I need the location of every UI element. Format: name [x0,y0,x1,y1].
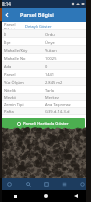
staticText: 1441 [45,72,55,77]
button[interactable]: Zemin Tipi [0,101,91,108]
button[interactable]: Back [0,8,14,22]
staticText: 8:14 [2,1,11,7]
staticText: Yukarı [45,48,57,53]
staticText: İl [4,32,7,37]
staticText: Ordu [45,32,55,37]
button[interactable]: Parsel Bilgisi [0,22,91,30]
staticText: Parsel [4,72,16,77]
staticText: Mahalle No [4,56,26,61]
button[interactable]: Menü [73,178,91,190]
button[interactable]: Back [61,190,91,202]
staticText: Pafta [4,109,14,114]
button[interactable]: Recents [0,190,31,202]
button[interactable]: Kayıtlar [55,178,73,190]
staticText: Mahalle/Köy [4,48,28,53]
staticText: Tarla [45,88,55,93]
staticText: Ünye [45,40,55,45]
button[interactable]: Parsel [37,178,55,190]
staticText: 2.845 m2 [45,80,63,85]
button[interactable]: Mahalle No [0,54,91,62]
staticText: Ana Taşınmaz [45,102,71,107]
button[interactable]: Yüz Ölçüm [0,78,91,86]
button[interactable]: Ara [19,178,37,190]
staticText: 10025 [45,56,57,61]
button[interactable]: İlçe [0,38,91,46]
button[interactable]: Ada [0,62,91,70]
button[interactable]: Harita [0,178,19,190]
button[interactable]: Mahalle/Köy [0,46,91,54]
button[interactable]: Parseli Haritada Göster [1,118,85,129]
staticText: 0 [45,64,48,69]
button[interactable]: Nitelik [0,86,91,94]
staticText: Parsel Bilgisi [20,11,54,19]
staticText: Detaylı Göster [25,24,52,29]
staticText: Ada [4,64,12,69]
button[interactable]: Parsel [0,70,91,78]
button[interactable]: Mevkii [0,94,91,101]
staticText: Parseli Haritada Göster [23,121,69,127]
staticText: Merkez [45,95,59,100]
button[interactable]: Home [31,190,61,202]
staticText: Mevkii [4,95,17,100]
button[interactable]: İl [0,30,91,38]
staticText: G39-d-14-3-d [45,109,70,114]
staticText: Yüz Ölçüm [4,80,24,85]
staticText: Zemin Tipi [4,102,24,107]
staticText: Parsel Bilgisi [4,22,25,30]
staticText: İlçe [4,40,11,45]
staticText: Nitelik [4,88,16,93]
button[interactable]: Pafta [0,108,91,115]
